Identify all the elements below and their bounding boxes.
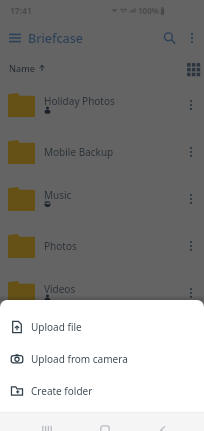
button[interactable]: Item options [181, 142, 201, 162]
button[interactable]: More options [181, 27, 203, 49]
button[interactable]: Item options [181, 283, 201, 303]
button[interactable]: Back [153, 421, 171, 431]
staticText: Upload file [31, 320, 82, 334]
staticText: Videos [44, 282, 76, 296]
button[interactable]: Mobile Backup [0, 128, 204, 175]
button[interactable]: Holiday Photos [0, 81, 204, 128]
button[interactable]: Recent apps [38, 420, 56, 431]
button[interactable]: Home [96, 421, 114, 431]
staticText: 100% [138, 5, 159, 16]
button[interactable]: Item options [181, 189, 201, 209]
button[interactable]: Switch to grid view [184, 60, 203, 79]
staticText: Upload from camera [31, 352, 128, 366]
button[interactable]: Item options [181, 95, 201, 115]
button[interactable]: Upload file [0, 311, 204, 343]
button[interactable]: Upload from camera [0, 343, 204, 375]
staticText: 17:41 [10, 5, 32, 17]
button[interactable]: Search [157, 26, 181, 50]
staticText: Name [9, 62, 35, 74]
staticText: Holiday Photos [44, 94, 115, 108]
button[interactable]: Create folder [0, 375, 204, 407]
button[interactable]: Name [9, 62, 46, 74]
staticText: Briefcase [28, 30, 84, 47]
staticText: Create folder [31, 384, 93, 398]
staticText: Photos [44, 239, 77, 253]
button[interactable]: Music [0, 175, 204, 222]
staticText: Music [44, 188, 72, 202]
button[interactable]: Item options [181, 236, 201, 256]
button[interactable]: Navigation menu [4, 27, 26, 49]
button[interactable]: Videos [0, 269, 204, 316]
staticText: Mobile Backup [44, 145, 114, 159]
button[interactable]: Photos [0, 222, 204, 269]
